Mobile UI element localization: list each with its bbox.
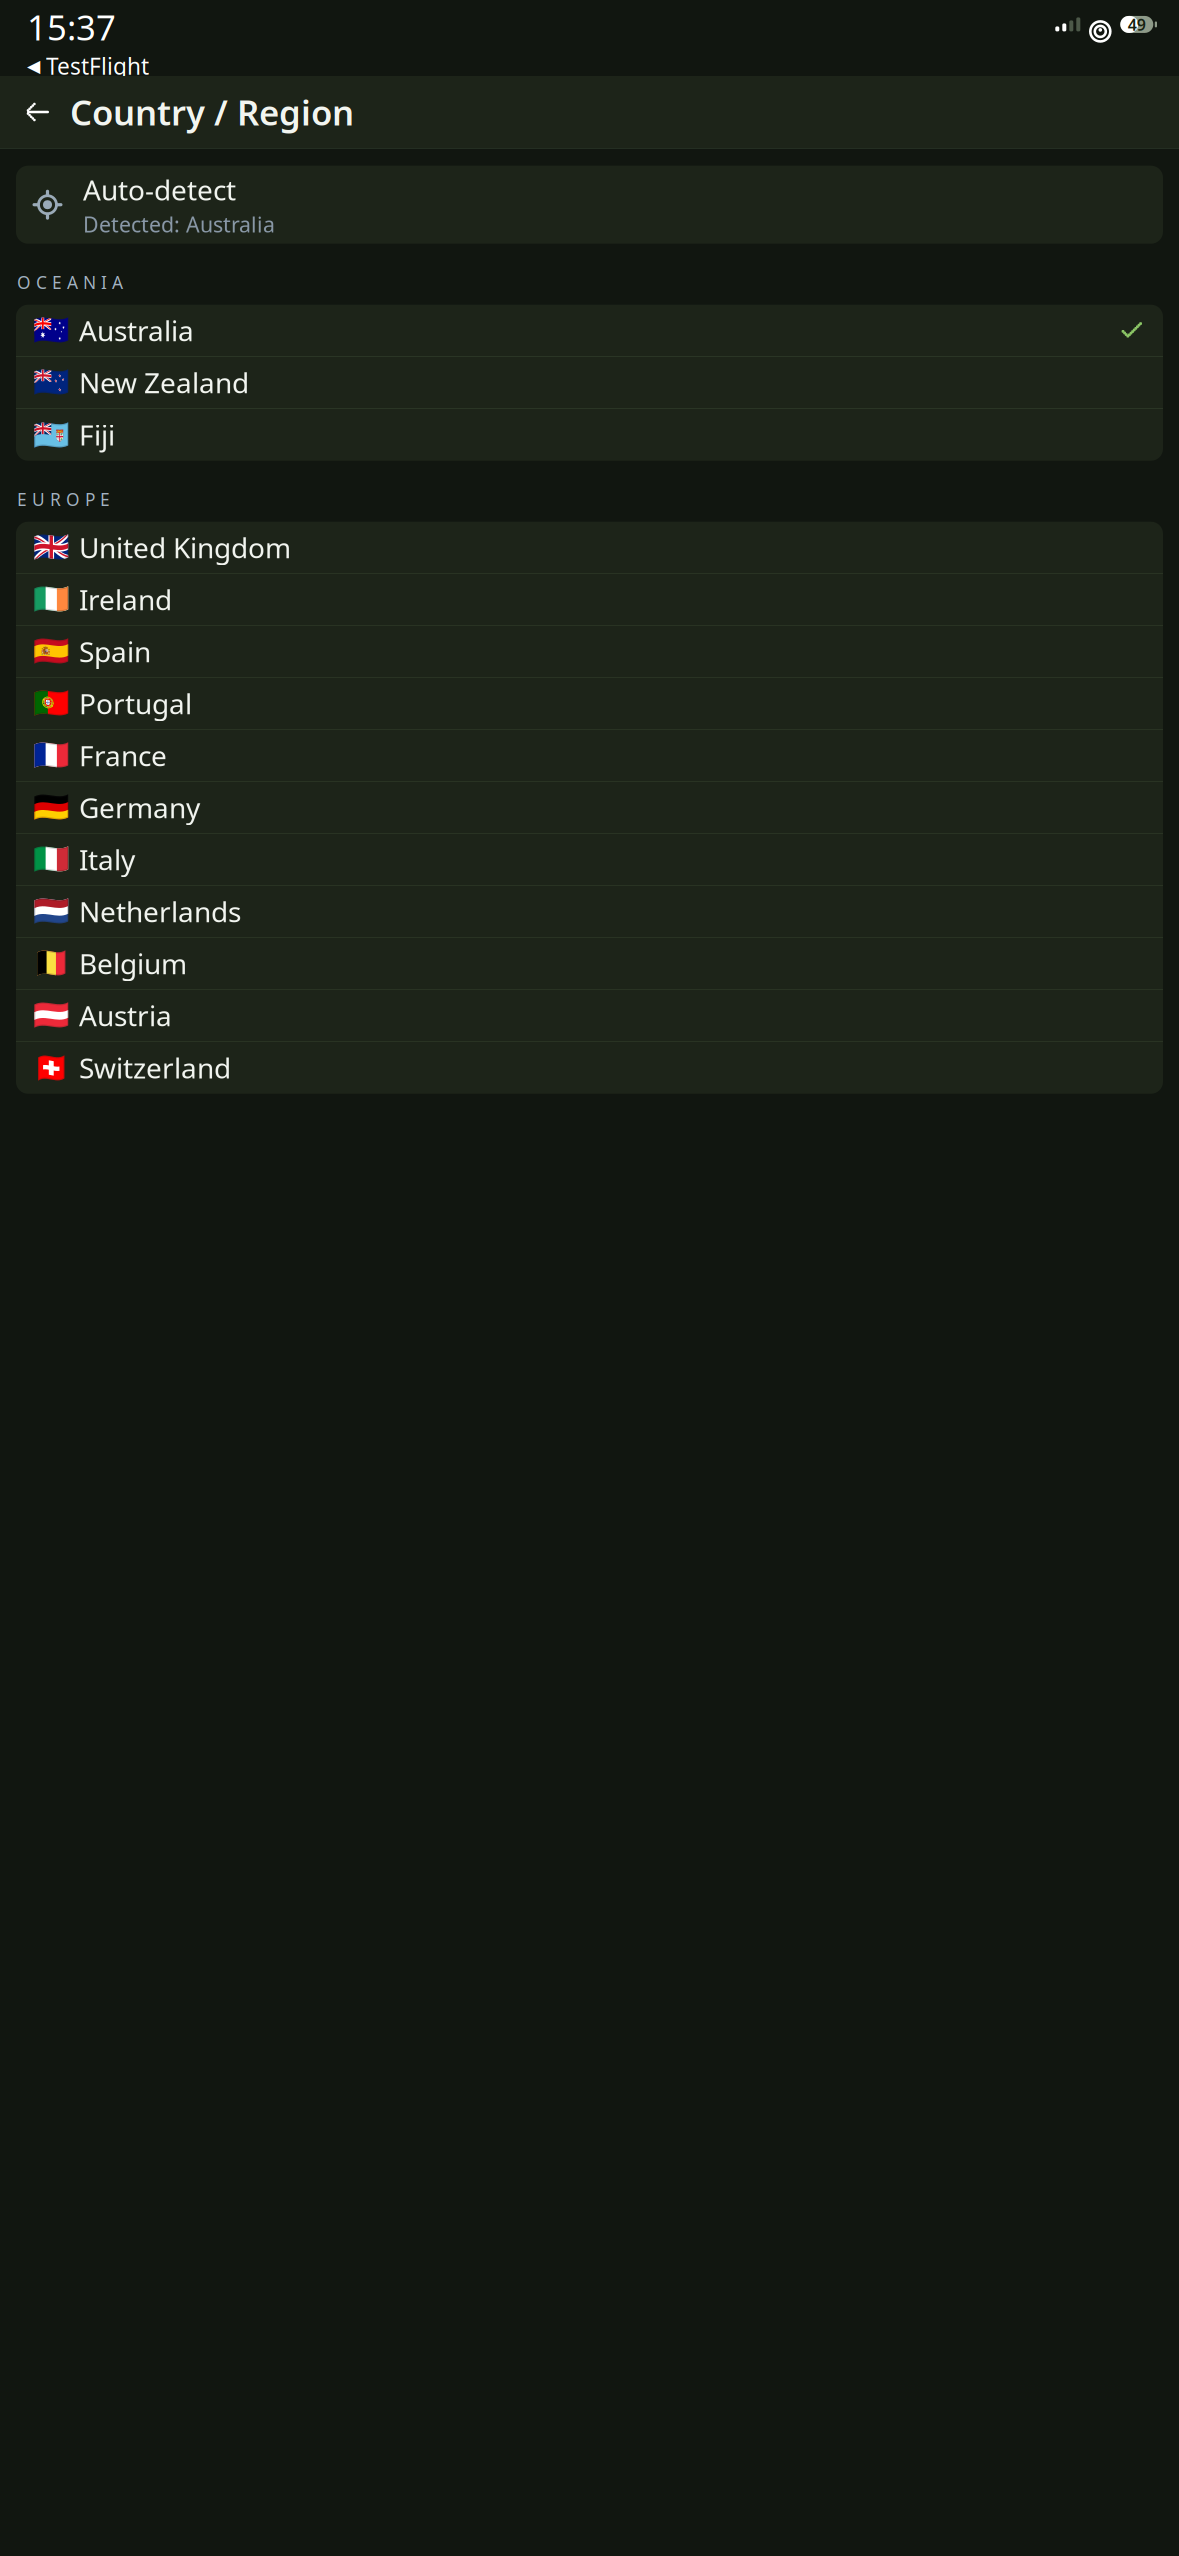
button[interactable]: 🇵🇹 bbox=[16, 678, 1163, 730]
staticText: New Zealand bbox=[79, 364, 249, 401]
button[interactable]: 🇮🇪 bbox=[16, 574, 1163, 626]
staticText: United Kingdom bbox=[79, 529, 291, 566]
button[interactable]: Back bbox=[12, 86, 64, 138]
staticText: 🇵🇹 bbox=[33, 687, 70, 720]
staticText: 49 bbox=[1128, 14, 1146, 35]
button[interactable]: 🇦🇹 bbox=[16, 990, 1163, 1042]
staticText: 🇮🇪 bbox=[33, 583, 70, 616]
button[interactable]: 🇫🇯 bbox=[16, 409, 1163, 461]
staticText: Portugal bbox=[79, 685, 192, 722]
button[interactable]: 🇦🇺 bbox=[16, 305, 1163, 357]
staticText: 🇳🇿 bbox=[33, 366, 70, 399]
staticText: 🇪🇸 bbox=[33, 635, 70, 668]
button[interactable]: 🇧🇪 bbox=[16, 938, 1163, 990]
staticText: 🇫🇯 bbox=[33, 418, 70, 451]
button[interactable]: 🇮🇹 bbox=[16, 834, 1163, 886]
staticText: Detected: Australia bbox=[83, 210, 275, 238]
staticText: Netherlands bbox=[79, 893, 241, 930]
button[interactable]: 🇳🇿 bbox=[16, 357, 1163, 409]
button[interactable]: Auto-detect bbox=[16, 166, 1163, 244]
button[interactable]: 🇪🇸 bbox=[16, 626, 1163, 678]
button[interactable]: 🇩🇪 bbox=[16, 782, 1163, 834]
staticText: Auto-detect bbox=[83, 171, 236, 208]
staticText: 🇧🇪 bbox=[33, 947, 70, 980]
button[interactable]: 🇳🇱 bbox=[16, 886, 1163, 938]
button[interactable]: 🇨🇭 bbox=[16, 1042, 1163, 1094]
staticText: Country / Region bbox=[70, 89, 354, 135]
staticText: ◀ bbox=[27, 56, 40, 76]
staticText: 🇬🇧 bbox=[33, 531, 70, 564]
staticText: 🇩🇪 bbox=[33, 791, 70, 824]
staticText: 🇮🇹 bbox=[33, 843, 70, 876]
button[interactable]: 🇫🇷 bbox=[16, 730, 1163, 782]
staticText: 🇫🇷 bbox=[33, 739, 70, 772]
staticText: Italy bbox=[79, 841, 135, 878]
staticText: Australia bbox=[79, 312, 194, 349]
staticText: 🇦🇹 bbox=[33, 999, 70, 1032]
staticText: 🇦🇺 bbox=[33, 314, 70, 347]
staticText: 🇨🇭 bbox=[33, 1051, 70, 1084]
staticText: France bbox=[79, 737, 167, 774]
staticText: Germany bbox=[79, 789, 200, 826]
button[interactable]: 🇬🇧 bbox=[16, 522, 1163, 574]
staticText: Austria bbox=[79, 997, 172, 1034]
staticText: TestFlight bbox=[46, 51, 149, 81]
staticText: O C E A N I A bbox=[17, 271, 123, 294]
staticText: E U R O P E bbox=[17, 488, 110, 511]
staticText: 🇳🇱 bbox=[33, 895, 70, 928]
staticText: Belgium bbox=[79, 945, 187, 982]
staticText: Ireland bbox=[79, 581, 172, 618]
staticText: 15:37 bbox=[27, 4, 116, 50]
staticText: Fiji bbox=[79, 416, 115, 453]
staticText: Switzerland bbox=[79, 1049, 231, 1086]
staticText: Spain bbox=[79, 633, 151, 670]
